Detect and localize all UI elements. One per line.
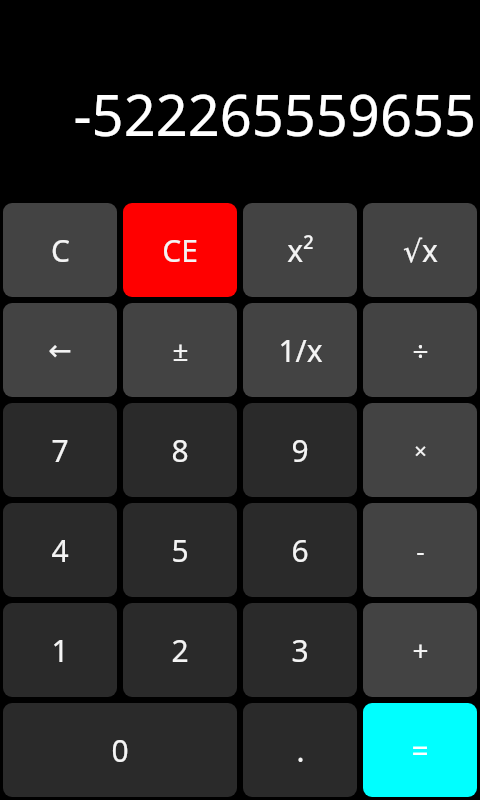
- staticText: ←: [48, 334, 72, 367]
- staticText: x²: [287, 230, 314, 271]
- staticText: 9: [291, 430, 309, 471]
- button[interactable]: C: [3, 203, 117, 297]
- button[interactable]: 5: [123, 503, 237, 597]
- button[interactable]: +: [363, 603, 477, 697]
- staticText: ±: [172, 331, 189, 369]
- button[interactable]: √x: [363, 203, 477, 297]
- staticText: ×: [414, 435, 427, 465]
- staticText: +: [412, 631, 429, 669]
- button[interactable]: 2: [123, 603, 237, 697]
- button[interactable]: 1: [3, 603, 117, 697]
- button[interactable]: 3: [243, 603, 357, 697]
- staticText: C: [51, 230, 70, 271]
- staticText: =: [411, 730, 429, 771]
- button[interactable]: =: [363, 703, 477, 797]
- button[interactable]: x²: [243, 203, 357, 297]
- staticText: 4: [51, 530, 69, 571]
- staticText: ÷: [412, 331, 429, 369]
- staticText: -: [416, 533, 425, 568]
- button[interactable]: 7: [3, 403, 117, 497]
- staticText: √x: [403, 230, 438, 271]
- button[interactable]: .: [243, 703, 357, 797]
- staticText: 8: [171, 430, 189, 471]
- button[interactable]: 0: [3, 703, 237, 797]
- staticText: 1/x: [278, 330, 323, 371]
- staticText: 1: [51, 630, 69, 671]
- button[interactable]: 1/x: [243, 303, 357, 397]
- button[interactable]: 8: [123, 403, 237, 497]
- staticText: .: [296, 730, 305, 771]
- staticText: 7: [51, 430, 69, 471]
- button[interactable]: 4: [3, 503, 117, 597]
- button[interactable]: ÷: [363, 303, 477, 397]
- button[interactable]: -: [363, 503, 477, 597]
- button[interactable]: 6: [243, 503, 357, 597]
- staticText: 3: [291, 630, 309, 671]
- staticText: 0: [111, 730, 129, 771]
- staticText: 6: [291, 530, 309, 571]
- staticText: 2: [171, 630, 189, 671]
- staticText: CE: [162, 230, 198, 271]
- button[interactable]: ±: [123, 303, 237, 397]
- button[interactable]: CE: [123, 203, 237, 297]
- button[interactable]: 9: [243, 403, 357, 497]
- staticText: -522265559655: [73, 76, 476, 152]
- staticText: 5: [171, 530, 189, 571]
- button[interactable]: ×: [363, 403, 477, 497]
- button[interactable]: Backspace: [3, 303, 117, 397]
